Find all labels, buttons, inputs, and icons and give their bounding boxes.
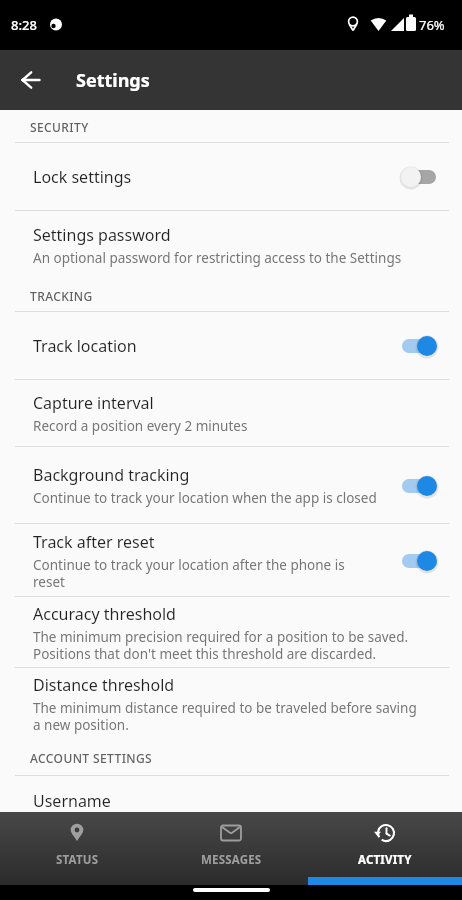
button[interactable]: Distance threshold	[0, 668, 462, 739]
staticText: The minimum precision required for a pos…	[33, 628, 409, 663]
staticText: Capture interval	[33, 392, 154, 414]
staticText: Settings password	[33, 224, 171, 246]
button[interactable]: Username	[0, 776, 462, 812]
staticText: Username	[33, 790, 111, 812]
staticText: Settings	[76, 68, 150, 93]
button[interactable]: Accuracy threshold	[0, 597, 462, 668]
button[interactable]: Capture interval	[0, 380, 462, 447]
staticText: Track location	[33, 335, 137, 357]
staticText: Accuracy threshold	[33, 603, 176, 625]
staticText: 8:28	[11, 16, 37, 34]
staticText: Continue to track your location after th…	[33, 556, 345, 591]
button[interactable]: Track location	[0, 312, 462, 380]
staticText: Continue to track your location when the…	[33, 489, 377, 507]
staticText: The minimum distance required to be trav…	[33, 699, 417, 734]
staticText: MESSAGES	[201, 852, 262, 868]
staticText: TRACKING	[30, 288, 93, 304]
button[interactable]: Track after reset	[0, 524, 462, 597]
button[interactable]: STATUS	[0, 812, 154, 885]
staticText: Background tracking	[33, 464, 190, 486]
staticText: An optional password for restricting acc…	[33, 249, 402, 267]
staticText: 76%	[419, 16, 445, 34]
staticText: SECURITY	[30, 119, 89, 135]
button[interactable]: Background tracking	[0, 447, 462, 524]
staticText: STATUS	[56, 852, 99, 868]
button[interactable]: Lock settings	[0, 143, 462, 211]
staticText: Track after reset	[33, 531, 155, 553]
staticText: ACTIVITY	[358, 852, 412, 868]
button[interactable]: Settings password	[0, 211, 462, 279]
button[interactable]: ACTIVITY	[308, 812, 462, 885]
staticText: Lock settings	[33, 166, 132, 188]
staticText: Record a position every 2 minutes	[33, 417, 248, 435]
button[interactable]: MESSAGES	[154, 812, 308, 885]
staticText: Distance threshold	[33, 674, 175, 696]
staticText: ACCOUNT SETTINGS	[30, 750, 153, 766]
button[interactable]	[12, 61, 50, 99]
